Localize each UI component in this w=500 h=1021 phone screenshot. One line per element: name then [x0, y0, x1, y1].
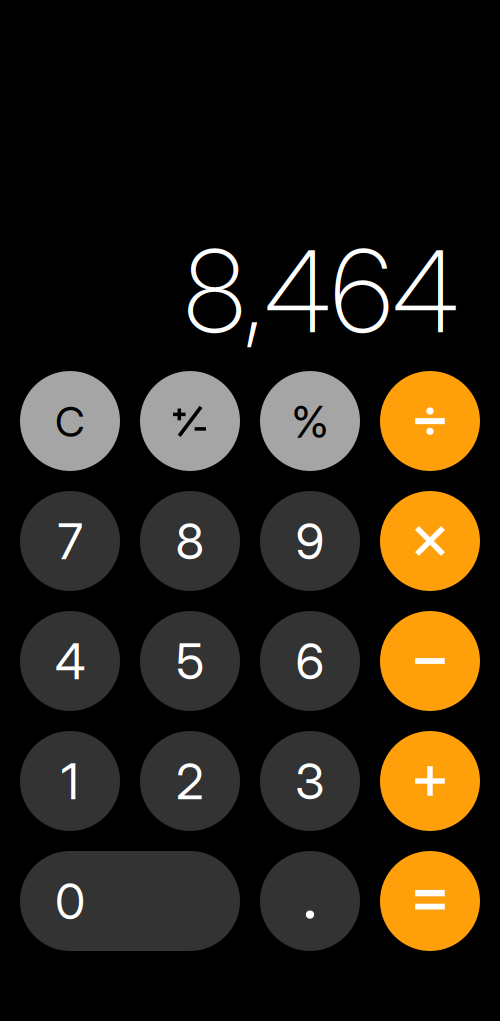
button[interactable]: 0: [20, 851, 240, 951]
button[interactable]: Minus: [380, 611, 480, 711]
staticText: 8: [175, 511, 204, 571]
button[interactable]: 1: [20, 731, 120, 831]
staticText: %: [291, 395, 328, 448]
button[interactable]: 7: [20, 491, 120, 591]
button[interactable]: Equals: [380, 851, 480, 951]
staticText: 5: [176, 631, 204, 691]
staticText: 3: [295, 751, 325, 811]
staticText: 9: [295, 511, 324, 571]
staticText: 7: [57, 511, 82, 571]
button[interactable]: Decimal point: [260, 851, 360, 951]
button[interactable]: Plus minus: [140, 371, 240, 471]
staticText: 1: [61, 751, 79, 811]
button[interactable]: 6: [260, 611, 360, 711]
button[interactable]: 5: [140, 611, 240, 711]
button[interactable]: 3: [260, 731, 360, 831]
staticText: 0: [55, 871, 85, 931]
button[interactable]: C: [20, 371, 120, 471]
staticText: 4: [55, 631, 85, 691]
staticText: C: [55, 397, 85, 447]
button[interactable]: 4: [20, 611, 120, 711]
staticText: 6: [295, 631, 324, 691]
button[interactable]: Divide: [380, 371, 480, 471]
button[interactable]: 9: [260, 491, 360, 591]
button[interactable]: Multiply: [380, 491, 480, 591]
button[interactable]: 2: [140, 731, 240, 831]
button[interactable]: 8: [140, 491, 240, 591]
staticText: 2: [176, 751, 204, 811]
staticText: 8,464: [184, 222, 459, 359]
button[interactable]: Plus: [380, 731, 480, 831]
button[interactable]: %: [260, 371, 360, 471]
